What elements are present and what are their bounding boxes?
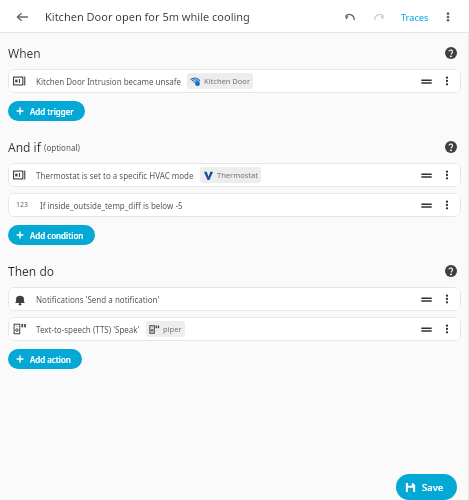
staticText: Kitchen Door Intrusion became unsafe	[36, 76, 181, 87]
staticText: And if	[8, 139, 41, 155]
button[interactable]: Notifications 'Send a notification'	[8, 287, 461, 311]
button[interactable]: Reorder	[416, 195, 436, 215]
button[interactable]: Back	[10, 5, 34, 29]
staticText: piper	[163, 324, 182, 334]
button[interactable]: piper	[146, 321, 185, 337]
button[interactable]: Undo	[337, 5, 361, 29]
button[interactable]: 123	[8, 193, 461, 217]
staticText: Traces	[401, 11, 429, 23]
button[interactable]: Add trigger	[8, 101, 85, 121]
button[interactable]: More options	[438, 320, 456, 338]
staticText: Notifications 'Send a notification'	[36, 294, 160, 305]
staticText: 123	[16, 200, 29, 210]
staticText: Kitchen Door open for 5m while cooling	[45, 9, 337, 24]
button[interactable]: More options	[438, 196, 456, 214]
staticText: (optional)	[44, 142, 80, 153]
staticText: Save	[422, 481, 444, 494]
button[interactable]: Thermostat is set to a specific HVAC mod…	[8, 163, 461, 187]
button[interactable]: More options	[437, 6, 459, 28]
button[interactable]: Kitchen Door	[187, 73, 253, 89]
button[interactable]: Add action	[8, 349, 82, 369]
button[interactable]: Reorder	[416, 289, 436, 309]
button[interactable]: Kitchen Door Intrusion became unsafe	[8, 69, 461, 93]
staticText: Add condition	[30, 230, 84, 241]
staticText: If inside_outside_temp_diff is below -5	[40, 200, 183, 211]
staticText: Text-to-speech (TTS) 'Speak'	[36, 324, 140, 335]
button[interactable]: Reorder	[416, 165, 436, 185]
staticText: Add trigger	[30, 106, 74, 117]
button[interactable]: Reorder	[416, 71, 436, 91]
button[interactable]: Help	[441, 43, 461, 63]
button[interactable]: Reorder	[416, 319, 436, 339]
button[interactable]: Thermostat	[200, 167, 261, 183]
button[interactable]: Traces	[397, 7, 433, 27]
staticText: Kitchen Door	[204, 76, 250, 86]
button[interactable]: Help	[441, 261, 461, 281]
button[interactable]: More options	[438, 72, 456, 90]
button[interactable]: Help	[441, 137, 461, 157]
button[interactable]: More options	[438, 290, 456, 308]
button[interactable]: Redo	[367, 5, 391, 29]
button[interactable]: Text-to-speech (TTS) 'Speak'	[8, 317, 461, 341]
staticText: Add action	[30, 354, 71, 365]
staticText: Thermostat is set to a specific HVAC mod…	[36, 170, 194, 181]
button[interactable]: Save	[396, 474, 457, 500]
staticText: When	[8, 45, 41, 61]
button[interactable]: Add condition	[8, 225, 95, 245]
button[interactable]: More options	[438, 166, 456, 184]
staticText: Then do	[8, 263, 55, 279]
staticText: Thermostat	[217, 170, 258, 180]
